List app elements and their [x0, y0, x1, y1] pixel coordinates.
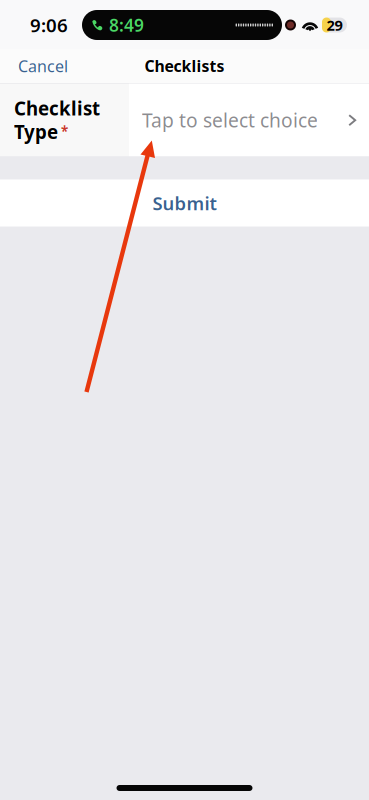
staticText: 29 — [326, 15, 342, 35]
button[interactable]: Checklist — [0, 83, 369, 156]
staticText: 9:06 — [30, 13, 68, 37]
staticText: 8:49 — [109, 13, 144, 36]
button[interactable]: Submit — [0, 179, 369, 226]
staticText: Cancel — [18, 55, 68, 77]
staticText: Submit — [152, 190, 216, 216]
button[interactable]: Cancel — [0, 47, 86, 85]
staticText: * — [61, 122, 68, 140]
staticText: Type — [14, 119, 58, 144]
staticText: Tap to select choice — [142, 107, 318, 133]
staticText: Checklists — [144, 55, 224, 77]
staticText: Checklist — [14, 96, 100, 121]
